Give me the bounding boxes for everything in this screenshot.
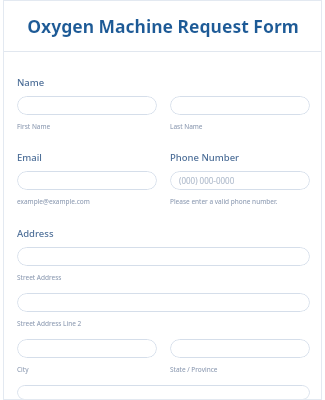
button[interactable]: [170, 96, 310, 115]
staticText: First Name: [17, 122, 51, 131]
button[interactable]: [170, 339, 310, 358]
staticText: example@example.com: [17, 197, 90, 206]
staticText: City: [17, 365, 29, 374]
button[interactable]: [17, 96, 157, 115]
staticText: Address: [17, 227, 54, 240]
staticText: Email: [17, 151, 42, 164]
staticText: Oxygen Machine Request Form: [27, 14, 299, 38]
button[interactable]: [17, 339, 157, 358]
button[interactable]: [17, 293, 310, 312]
staticText: Name: [17, 76, 45, 89]
staticText: Street Address Line 2: [17, 319, 82, 328]
staticText: (000) 000-0000: [179, 175, 235, 186]
button[interactable]: [17, 247, 310, 266]
button[interactable]: [17, 171, 157, 190]
staticText: Last Name: [170, 122, 203, 131]
staticText: Street Address: [17, 273, 62, 282]
button[interactable]: Postal code: [17, 385, 310, 400]
staticText: Phone Number: [170, 151, 240, 164]
staticText: Please enter a valid phone number.: [170, 197, 278, 206]
button[interactable]: (000) 000-0000: [170, 171, 310, 190]
staticText: State / Province: [170, 365, 218, 374]
